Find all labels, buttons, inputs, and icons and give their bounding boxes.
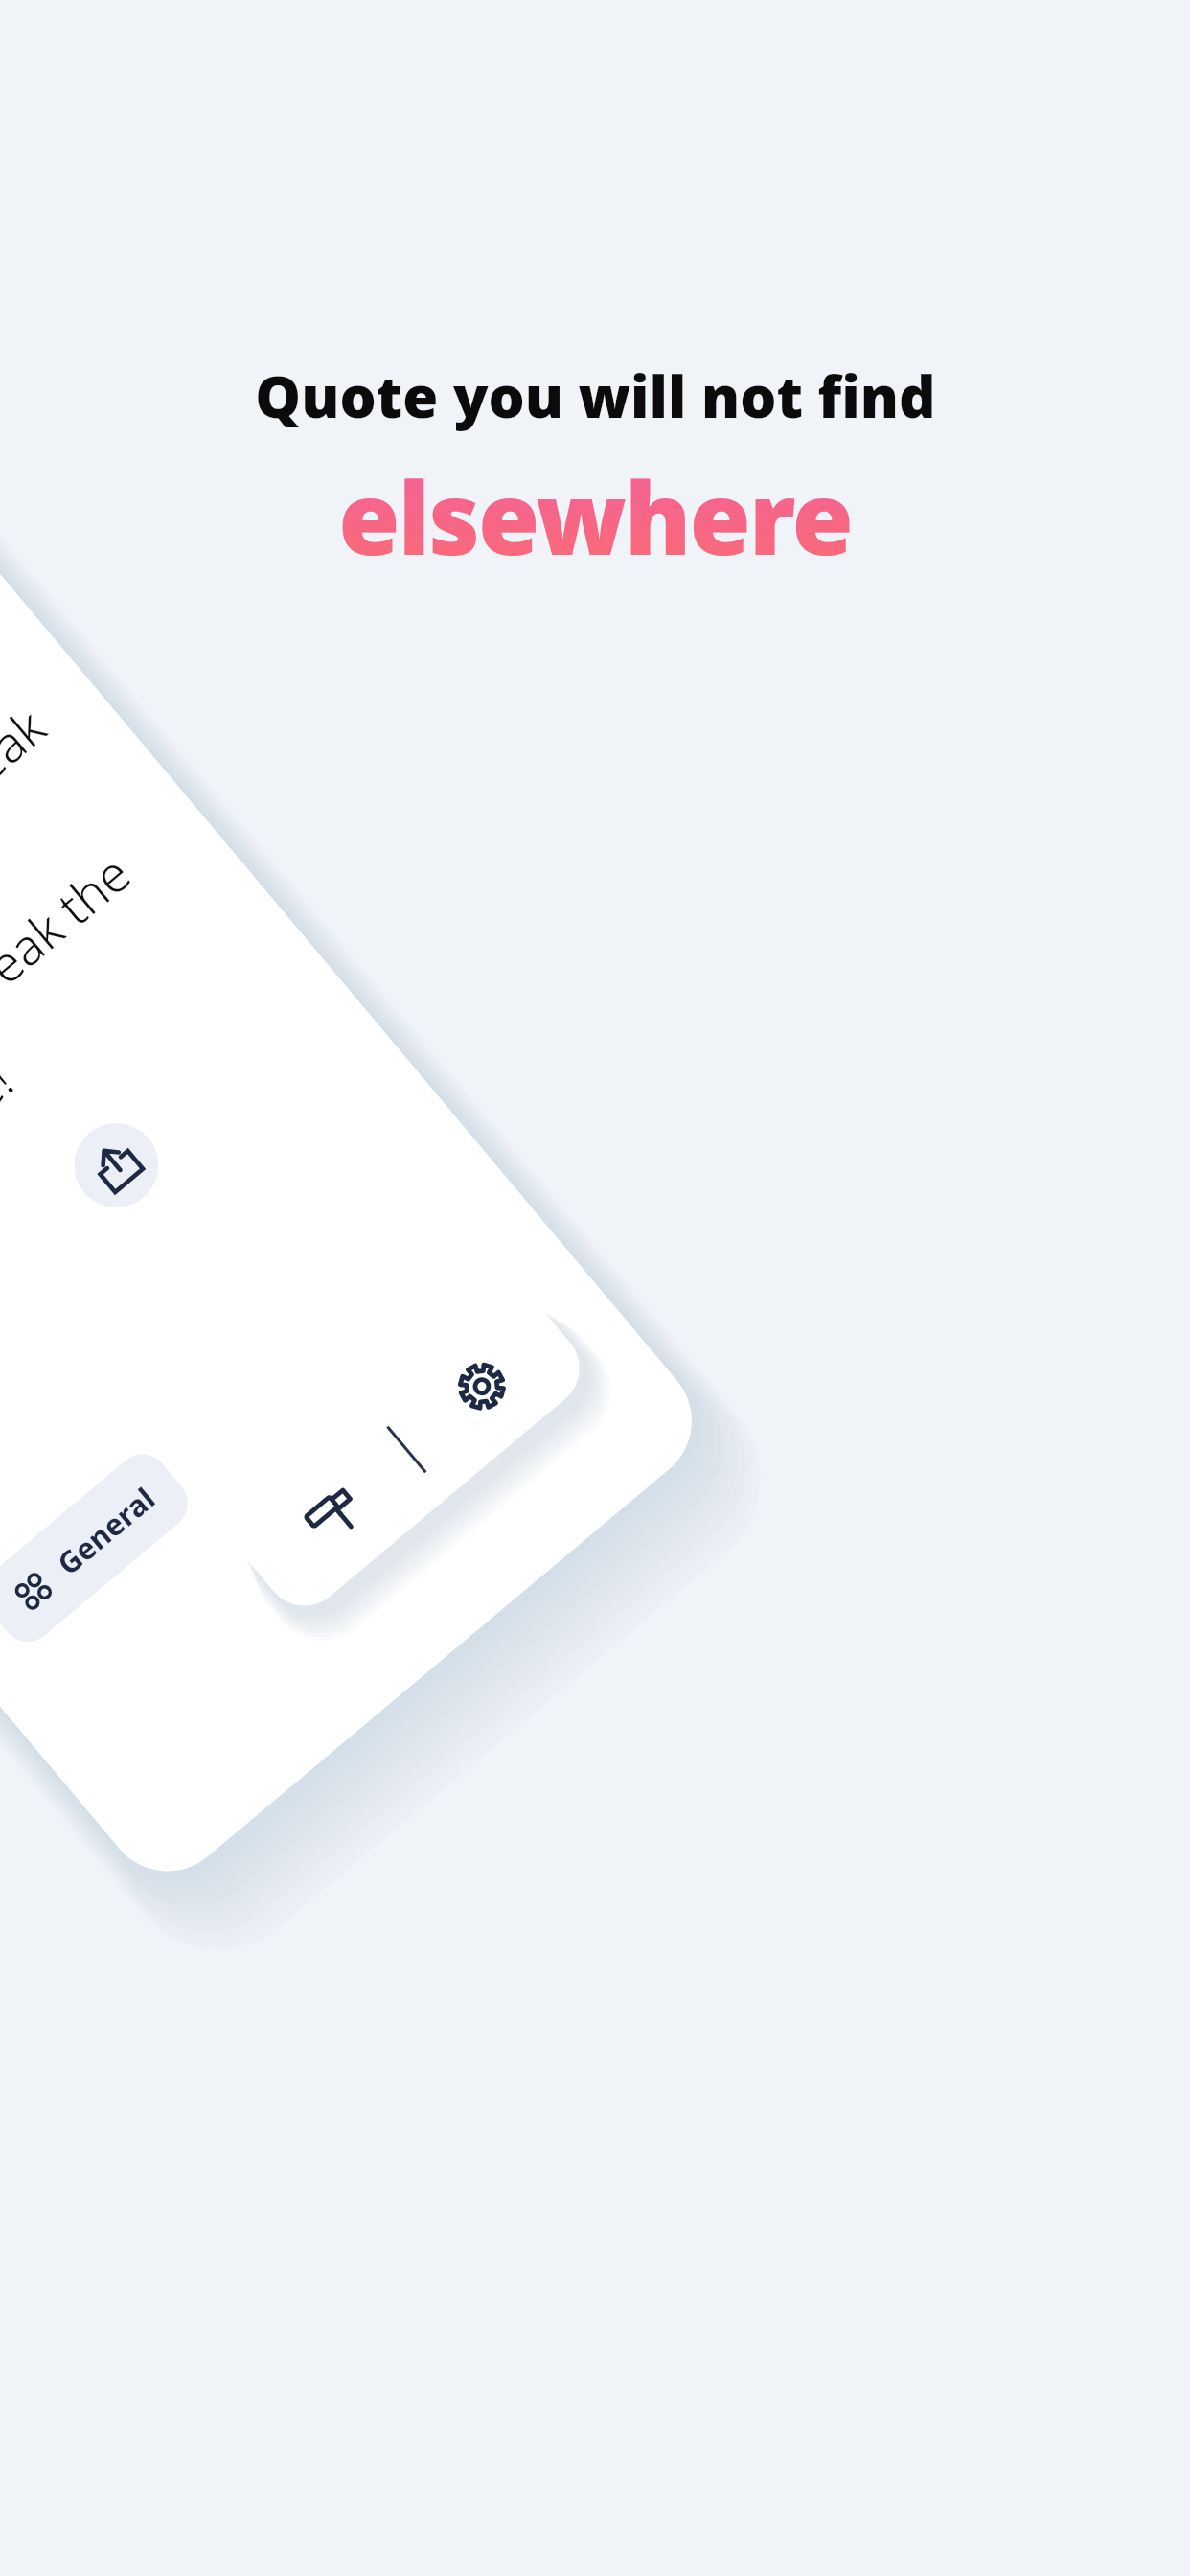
staticText: enough to dare break the [0, 839, 144, 1263]
staticText: General [48, 1478, 163, 1583]
button[interactable]: General [0, 1443, 199, 1652]
button[interactable]: Share [57, 1106, 176, 1225]
staticText: bars of its cage! [0, 1046, 26, 1327]
staticText: A bird in a cage can't break [0, 692, 59, 1135]
staticText: elsewhere [338, 448, 852, 585]
button[interactable]: Settings [367, 1276, 596, 1497]
button[interactable]: Theme [218, 1402, 446, 1622]
staticText: Quote you will not find [255, 356, 936, 435]
